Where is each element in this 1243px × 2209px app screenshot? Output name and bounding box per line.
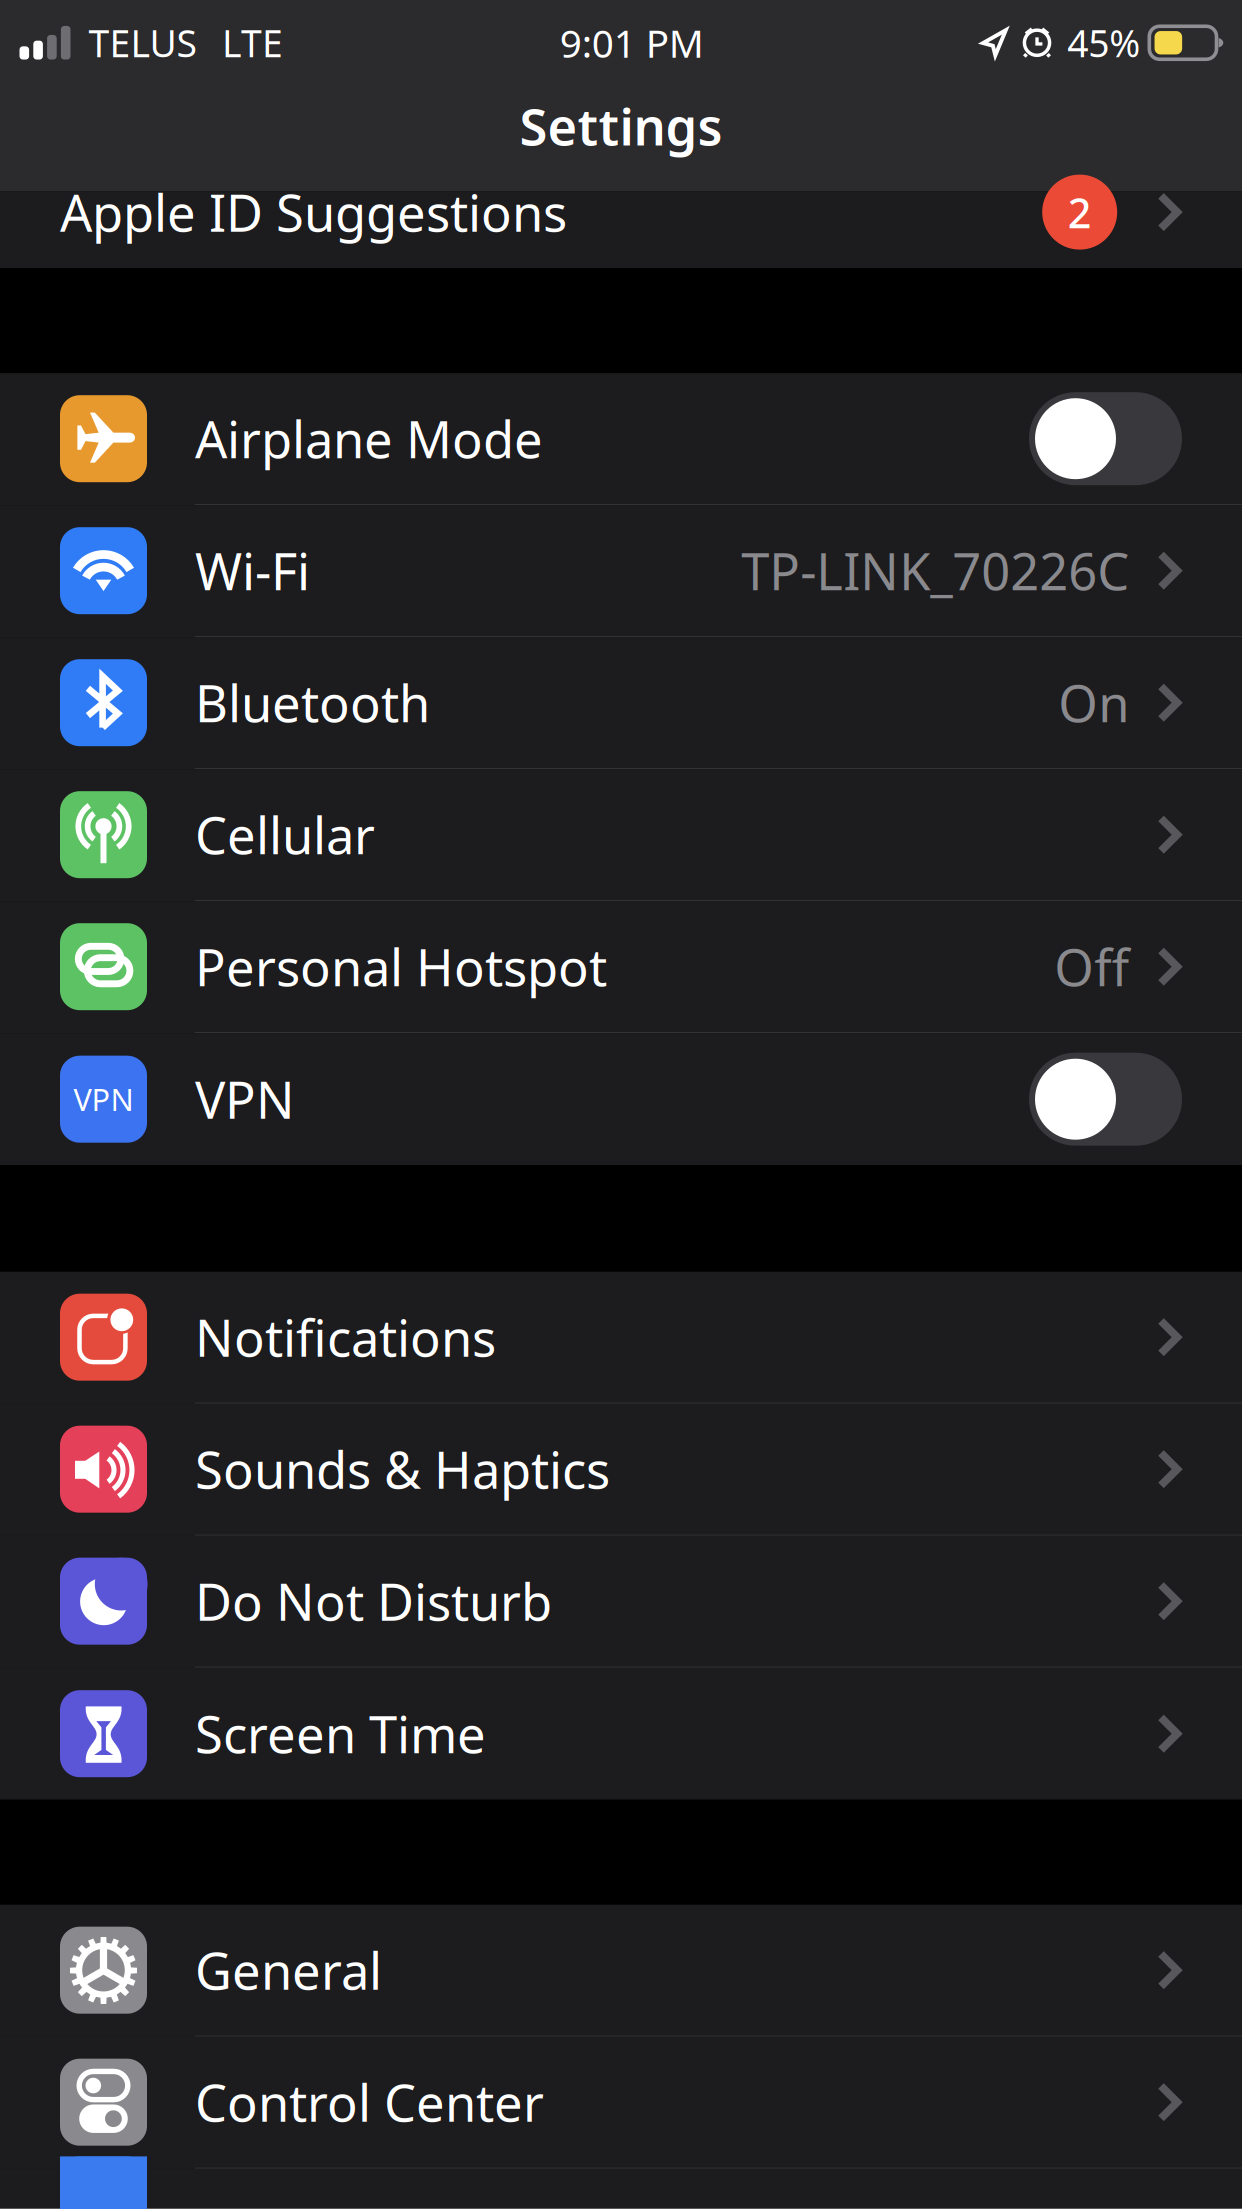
staticText: LTE <box>222 18 283 68</box>
button[interactable]: Wi-Fi <box>0 505 1242 637</box>
staticText: Do Not Disturb <box>195 1567 552 1635</box>
staticText: Off <box>1054 933 1129 1000</box>
staticText: 2 <box>1068 185 1092 240</box>
staticText: Control Center <box>195 2068 544 2136</box>
staticText: General <box>195 1936 382 2004</box>
button[interactable]: Airplane Mode <box>0 373 1242 505</box>
staticText: 45% <box>1067 18 1140 68</box>
button[interactable]: Notifications <box>0 1272 1242 1404</box>
staticText: Notifications <box>195 1303 496 1371</box>
staticText: VPN <box>73 1079 133 1119</box>
staticText: Airplane Mode <box>195 405 543 472</box>
button[interactable]: Apple ID Suggestions <box>0 191 1242 268</box>
staticText: TP-LINK_70226C <box>741 537 1129 604</box>
button[interactable]: Personal Hotspot <box>0 901 1242 1033</box>
staticText: Screen Time <box>195 1700 486 1767</box>
staticText: 9:01 PM <box>560 17 704 68</box>
button[interactable]: VPN <box>0 1033 1242 1165</box>
button[interactable]: Do Not Disturb <box>0 1536 1242 1668</box>
button[interactable]: General <box>0 1905 1242 2037</box>
button[interactable]: Cellular <box>0 769 1242 901</box>
button[interactable]: Screen Time <box>0 1668 1242 1800</box>
staticText: Bluetooth <box>195 669 430 736</box>
button[interactable]: Display & Brightness <box>0 2169 1242 2209</box>
button[interactable]: Control Center <box>0 2037 1242 2169</box>
staticText: Sounds & Haptics <box>195 1435 610 1503</box>
staticText: Cellular <box>195 801 375 868</box>
staticText: TELUS <box>88 18 196 68</box>
button[interactable]: Sounds & Haptics <box>0 1404 1242 1536</box>
button[interactable]: Bluetooth <box>0 637 1242 769</box>
staticText: Personal Hotspot <box>195 933 607 1000</box>
staticText: On <box>1058 669 1129 736</box>
staticText: Settings <box>519 92 722 160</box>
staticText: Apple ID Suggestions <box>60 178 567 246</box>
staticText: VPN <box>195 1066 295 1133</box>
staticText: Wi-Fi <box>195 537 310 604</box>
